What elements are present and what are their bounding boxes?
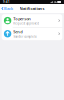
staticText: 9:41 bbox=[3, 0, 10, 4]
button[interactable]: To person bbox=[2, 14, 62, 27]
button[interactable]: Back bbox=[0, 5, 15, 12]
staticText: To person bbox=[13, 16, 31, 21]
staticText: Send bbox=[13, 29, 22, 34]
staticText: Back bbox=[4, 6, 13, 11]
staticText: Request approved bbox=[13, 22, 39, 25]
button[interactable]: Send bbox=[2, 27, 62, 40]
staticText: Notifications bbox=[19, 6, 44, 11]
staticText: Transfer complete bbox=[13, 35, 37, 38]
